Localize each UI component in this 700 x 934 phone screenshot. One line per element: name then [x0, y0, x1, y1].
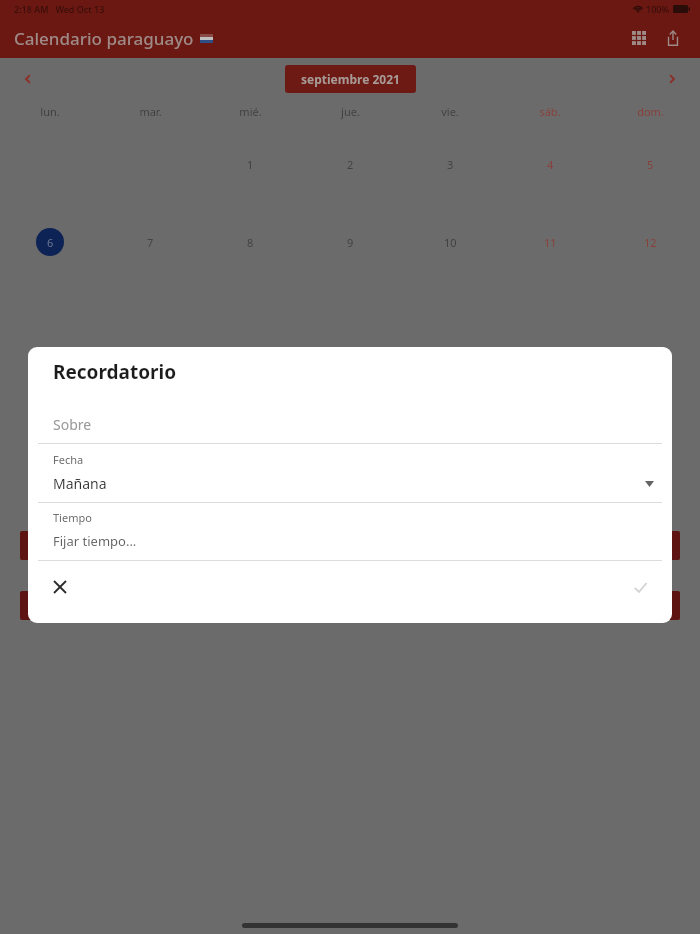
- staticText: 100%: [646, 3, 670, 15]
- staticText: 3: [447, 157, 454, 172]
- staticText: 2:18 AM Wed Oct 13: [14, 3, 105, 15]
- button[interactable]: Next month: [658, 65, 686, 93]
- staticText: Fecha: [53, 452, 84, 467]
- button[interactable]: 12: [630, 228, 670, 256]
- button[interactable]: 7: [130, 228, 170, 256]
- button[interactable]: 2: [330, 150, 370, 178]
- staticText: mié.: [239, 104, 262, 119]
- button[interactable]: Share: [656, 21, 690, 55]
- button[interactable]: Cancel: [42, 569, 78, 605]
- staticText: Calendario paraguayo: [14, 27, 194, 50]
- button[interactable]: Previous month: [14, 65, 42, 93]
- staticText: Fijar tiempo...: [53, 532, 137, 550]
- staticText: septiembre 2021: [301, 71, 400, 87]
- staticText: 1: [247, 157, 254, 172]
- staticText: 11: [544, 235, 557, 250]
- button[interactable]: Fecha: [28, 444, 672, 502]
- button[interactable]: Tiempo: [28, 503, 672, 560]
- button[interactable]: 3: [430, 150, 470, 178]
- button[interactable]: 8: [230, 228, 270, 256]
- staticText: 6: [47, 235, 54, 250]
- staticText: Tiempo: [53, 510, 92, 525]
- staticText: mar.: [139, 104, 162, 119]
- staticText: 12: [644, 235, 657, 250]
- staticText: 4: [547, 157, 554, 172]
- button[interactable]: Alarma: [20, 591, 340, 620]
- button[interactable]: Sobre: [28, 405, 672, 443]
- staticText: sáb.: [539, 104, 561, 119]
- staticText: 8: [247, 235, 254, 250]
- staticText: Sobre: [53, 415, 92, 434]
- button[interactable]: 10: [430, 228, 470, 256]
- button[interactable]: 11: [530, 228, 570, 256]
- staticText: 9: [347, 235, 354, 250]
- staticText: 2: [347, 157, 354, 172]
- staticText: 10: [444, 235, 457, 250]
- staticText: lun.: [40, 104, 60, 119]
- staticText: dom.: [637, 104, 664, 119]
- staticText: vie.: [441, 104, 459, 119]
- button[interactable]: Vacaciones: [20, 531, 340, 560]
- staticText: jue.: [341, 104, 360, 119]
- button[interactable]: Reloj mundial: [360, 591, 680, 620]
- button[interactable]: 5: [630, 150, 670, 178]
- button[interactable]: Apps grid: [622, 21, 656, 55]
- button[interactable]: Recordatorio: [360, 531, 680, 560]
- button[interactable]: 9: [330, 228, 370, 256]
- staticText: Mañana: [53, 474, 107, 493]
- button[interactable]: septiembre 2021: [285, 65, 416, 93]
- staticText: 5: [647, 157, 654, 172]
- staticText: Recordatorio: [53, 359, 177, 385]
- button[interactable]: 1: [230, 150, 270, 178]
- staticText: 7: [147, 235, 154, 250]
- button[interactable]: Confirm: [622, 569, 658, 605]
- button[interactable]: 4: [530, 150, 570, 178]
